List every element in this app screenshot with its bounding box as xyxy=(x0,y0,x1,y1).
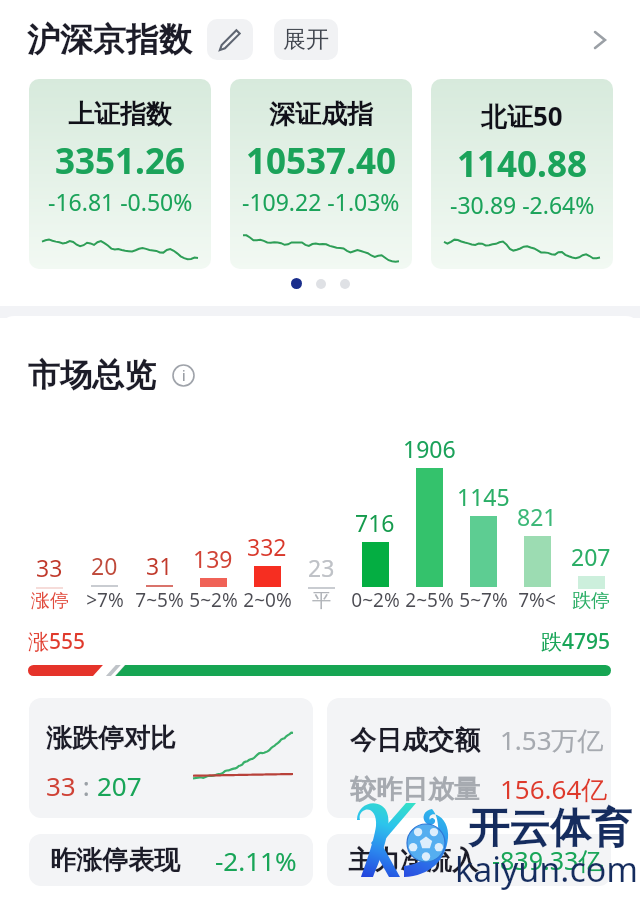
staticText: 821 xyxy=(517,501,557,532)
staticText: -109.22 -1.03% xyxy=(242,186,400,217)
staticText: 昨涨停表现 xyxy=(50,844,180,877)
staticText: 156.64亿 xyxy=(500,771,608,807)
staticText: 上证指数 xyxy=(68,98,172,131)
staticText: 今日成交额 xyxy=(350,724,480,757)
staticText: 展开 xyxy=(283,25,329,54)
staticText: 10537.40 xyxy=(246,137,396,185)
staticText: 沪深京指数 xyxy=(27,19,192,61)
staticText: 0~2% xyxy=(351,587,400,613)
staticText: kaiyun.com xyxy=(455,846,639,892)
button[interactable]: 昨涨停表现 xyxy=(29,834,313,886)
staticText: 主力净流入 xyxy=(348,844,478,877)
staticText: 7%< xyxy=(518,587,556,613)
staticText: -839.33亿 xyxy=(492,843,604,877)
staticText: 207 xyxy=(97,768,142,803)
staticText: 33 xyxy=(36,552,63,583)
staticText: 涨停 xyxy=(31,589,69,613)
staticText: 跌4795 xyxy=(541,627,611,656)
staticText: 开云体育 xyxy=(468,803,632,855)
staticText: 139 xyxy=(193,543,233,574)
staticText: : xyxy=(76,768,97,803)
staticText: 33 xyxy=(46,768,76,803)
staticText: 涨跌停对比 xyxy=(46,722,176,755)
staticText: 7~5% xyxy=(135,587,184,613)
button[interactable]: 今日成交额 xyxy=(327,698,611,818)
staticText: 平 xyxy=(312,589,331,613)
button[interactable]: 北证50 xyxy=(431,79,613,269)
staticText: 207 xyxy=(571,541,611,572)
staticText: 1140.88 xyxy=(457,140,587,188)
staticText: 涨555 xyxy=(28,627,86,656)
button[interactable]: 展开 xyxy=(274,19,338,60)
staticText: 跌停 xyxy=(572,589,610,613)
staticText: 23 xyxy=(308,552,335,583)
staticText: 3351.26 xyxy=(55,137,185,185)
staticText: 20 xyxy=(91,550,118,581)
staticText: 5~7% xyxy=(459,587,508,613)
staticText: 市场总览 xyxy=(28,355,156,395)
staticText: >7% xyxy=(86,587,124,613)
button[interactable]: Edit xyxy=(207,19,253,60)
button[interactable]: 上证指数 xyxy=(29,79,211,269)
staticText: 1906 xyxy=(403,433,456,464)
staticText: 1145 xyxy=(457,481,510,512)
staticText: -2.11% xyxy=(215,843,297,878)
staticText: 1.53万亿 xyxy=(500,722,604,758)
staticText: 716 xyxy=(355,507,395,538)
staticText: -16.81 -0.50% xyxy=(48,186,193,217)
button[interactable]: 涨跌停对比 xyxy=(29,698,313,818)
staticText: 2~5% xyxy=(405,587,454,613)
staticText: 深证成指 xyxy=(269,98,373,131)
staticText: -30.89 -2.64% xyxy=(450,189,595,220)
button[interactable]: Info xyxy=(172,364,195,387)
button[interactable]: 深证成指 xyxy=(230,79,412,269)
staticText: 332 xyxy=(247,531,287,562)
button[interactable]: More xyxy=(584,25,614,55)
staticText: 2~0% xyxy=(243,587,292,613)
button[interactable]: 主力净流入 xyxy=(327,834,611,886)
staticText: 北证50 xyxy=(481,98,563,134)
staticText: i xyxy=(182,366,186,385)
staticText: 5~2% xyxy=(189,587,238,613)
staticText: 31 xyxy=(146,550,173,581)
staticText: 较昨日放量 xyxy=(350,773,480,806)
